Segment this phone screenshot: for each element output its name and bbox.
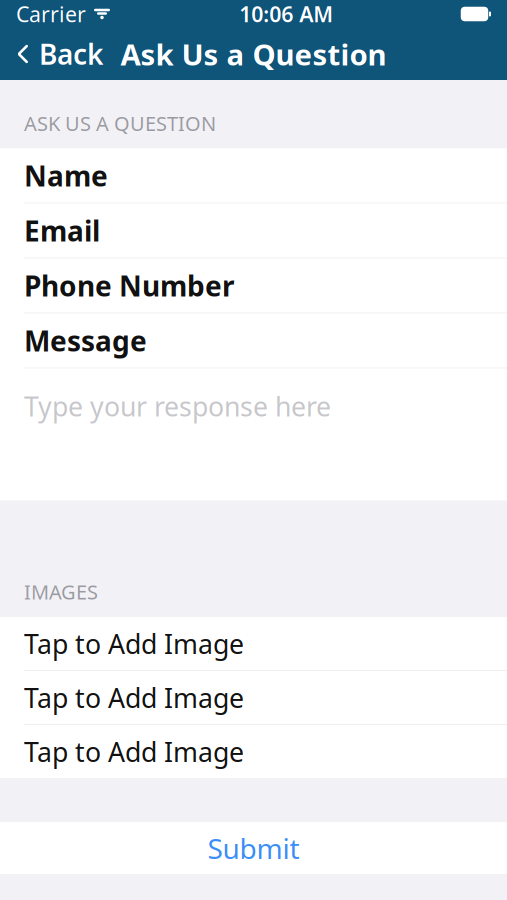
staticText: Message xyxy=(24,322,147,359)
button[interactable]: Tap to Add Image xyxy=(0,617,507,670)
button[interactable]: Tap to Add Image xyxy=(0,725,507,778)
button[interactable]: Message xyxy=(0,314,507,368)
staticText: Email xyxy=(24,212,100,249)
staticText: Carrier xyxy=(16,0,86,28)
staticText: Back xyxy=(39,35,103,73)
staticText: Submit xyxy=(207,829,299,867)
staticText: Name xyxy=(24,157,108,194)
button[interactable]: Submit xyxy=(0,822,507,874)
button[interactable]: Email xyxy=(0,204,507,258)
staticText: Type your response here xyxy=(24,389,331,424)
button[interactable]: Back xyxy=(0,28,119,80)
staticText: Tap to Add Image xyxy=(24,626,244,661)
staticText: Ask Us a Question xyxy=(120,34,386,73)
staticText: 10:06 AM xyxy=(239,0,333,28)
button[interactable]: Tap to Add Image xyxy=(0,671,507,724)
staticText: Tap to Add Image xyxy=(24,734,244,769)
staticText: IMAGES xyxy=(24,579,98,605)
button[interactable]: Phone Number xyxy=(0,259,507,313)
button[interactable]: Type your response here xyxy=(0,369,507,501)
staticText: Phone Number xyxy=(24,267,235,304)
staticText: Tap to Add Image xyxy=(24,680,244,715)
button[interactable]: Name xyxy=(0,149,507,203)
staticText: ASK US A QUESTION xyxy=(24,110,216,137)
